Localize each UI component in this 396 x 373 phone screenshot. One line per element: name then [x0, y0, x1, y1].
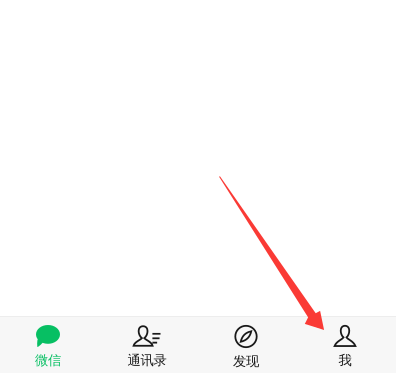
button[interactable]: 微信 — [0, 317, 97, 373]
staticText: 我 — [338, 352, 351, 368]
button[interactable]: 发现 — [196, 317, 295, 373]
staticText: 微信 — [35, 352, 61, 368]
staticText: 发现 — [233, 353, 259, 369]
button[interactable]: 我 — [295, 317, 394, 373]
staticText: 通讯录 — [127, 352, 166, 368]
button[interactable]: 通讯录 — [97, 317, 196, 373]
